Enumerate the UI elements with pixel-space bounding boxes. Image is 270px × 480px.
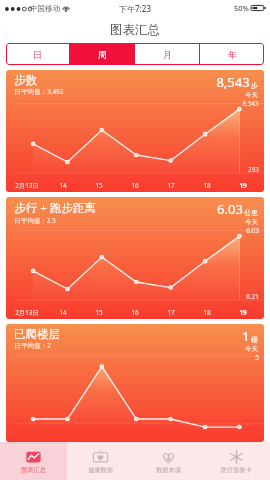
button[interactable]: 步行 + 跑步距离 <box>6 197 264 319</box>
button[interactable]: 数据来源 <box>134 442 202 480</box>
button[interactable]: 年 <box>200 43 264 65</box>
staticText: 图表汇总 <box>21 466 46 474</box>
staticText: 数据来源 <box>156 466 181 474</box>
staticText: 日平均值：2.5 <box>14 216 56 225</box>
staticText: 中国移动 <box>30 4 60 13</box>
staticText: 医疗急救卡 <box>221 466 252 474</box>
staticText: 已爬楼层 <box>14 327 60 341</box>
staticText: 0.21 <box>246 292 259 301</box>
staticText: 6.03 <box>217 200 243 218</box>
staticText: 周 <box>98 49 107 60</box>
button[interactable]: 图表汇总 <box>0 442 67 480</box>
staticText: 今天 <box>245 218 258 226</box>
staticText: 17 <box>167 181 175 190</box>
staticText: 2月13日 <box>15 308 39 317</box>
button[interactable]: 步数 <box>6 70 264 192</box>
staticText: 2月13日 <box>15 181 39 190</box>
staticText: 8,543 <box>242 99 259 108</box>
staticText: 楼 <box>251 335 258 344</box>
staticText: 年 <box>228 49 237 60</box>
staticText: 16 <box>131 308 139 317</box>
staticText: 日 <box>33 49 42 60</box>
staticText: 293 <box>248 165 259 174</box>
button[interactable]: 周 <box>70 43 134 65</box>
staticText: 14 <box>59 181 67 190</box>
button[interactable]: 已爬楼层 <box>6 324 264 442</box>
staticText: 18 <box>203 181 211 190</box>
button[interactable]: 医疗急救卡 <box>202 442 270 480</box>
staticText: 下午7:23 <box>119 3 151 14</box>
staticText: 步 <box>251 81 258 90</box>
staticText: 健康数据 <box>88 466 113 474</box>
staticText: 50% <box>234 3 249 13</box>
staticText: 1 <box>242 327 250 345</box>
button[interactable]: 月 <box>135 43 199 65</box>
staticText: 15 <box>95 308 103 317</box>
staticText: 17 <box>167 308 175 317</box>
staticText: 16 <box>131 181 139 190</box>
staticText: 步数 <box>14 73 37 87</box>
staticText: 5 <box>255 353 259 362</box>
staticText: 月 <box>163 49 172 60</box>
staticText: 步行 + 跑步距离 <box>14 200 96 216</box>
staticText: 今天 <box>245 91 258 99</box>
staticText: 今天 <box>245 345 258 353</box>
staticText: 14 <box>59 308 67 317</box>
staticText: 15 <box>95 181 103 190</box>
staticText: 18 <box>203 308 211 317</box>
staticText: 8,543 <box>216 73 250 91</box>
staticText: 19 <box>239 181 247 190</box>
button[interactable]: 健康数据 <box>67 442 134 480</box>
staticText: 19 <box>239 308 247 317</box>
staticText: 日平均值：2 <box>14 341 51 350</box>
button[interactable]: 日 <box>6 43 69 65</box>
staticText: 日平均值：3,492 <box>14 87 64 96</box>
staticText: 6.03 <box>246 226 259 235</box>
staticText: 图表汇总 <box>110 22 160 38</box>
staticText: 公里 <box>244 208 258 217</box>
